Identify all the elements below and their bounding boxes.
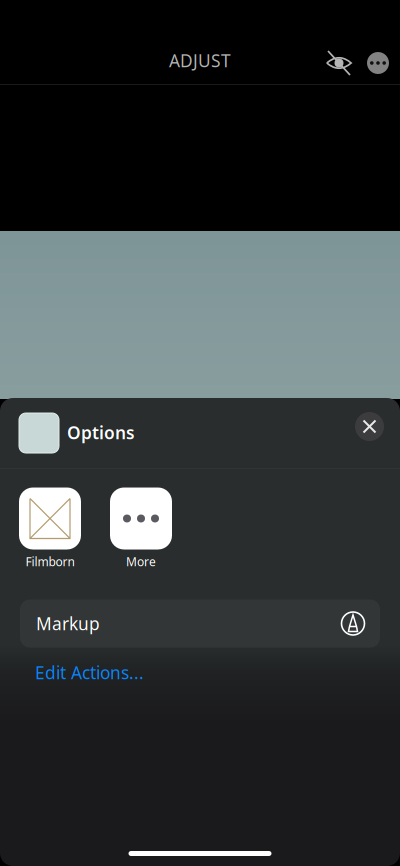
staticText: Edit Actions... [35, 661, 144, 684]
button[interactable]: Filmborn [19, 487, 81, 568]
staticText: Options [67, 421, 135, 444]
button[interactable]: Markup [20, 599, 380, 647]
staticText: More [126, 553, 156, 569]
staticText: ADJUST [169, 49, 231, 72]
staticText: Markup [36, 612, 100, 635]
staticText: Filmborn [25, 553, 74, 569]
button[interactable]: More options [365, 50, 391, 76]
button[interactable]: Edit Actions... [0, 659, 400, 685]
button[interactable]: Close [355, 412, 384, 441]
button[interactable]: Hide adjustments [326, 50, 352, 76]
button[interactable]: More [110, 487, 172, 568]
